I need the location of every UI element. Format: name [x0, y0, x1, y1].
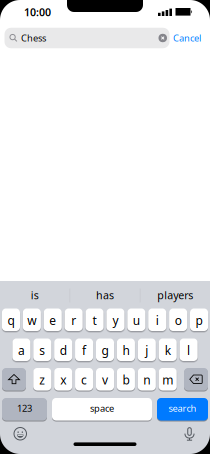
staticText: p: [196, 312, 203, 328]
staticText: space: [90, 402, 114, 414]
button[interactable]: t: [85, 308, 104, 331]
staticText: k: [165, 342, 171, 358]
button[interactable]: search: [157, 398, 208, 420]
button[interactable]: Dictation: [184, 425, 195, 439]
button[interactable]: players: [141, 281, 210, 304]
button[interactable]: n: [138, 368, 156, 390]
button[interactable]: space: [52, 398, 152, 420]
staticText: n: [143, 372, 150, 388]
button[interactable]: u: [127, 308, 145, 331]
staticText: i: [156, 312, 159, 328]
button[interactable]: z: [33, 368, 51, 390]
staticText: z: [39, 372, 45, 388]
staticText: c: [81, 372, 87, 388]
staticText: v: [102, 372, 108, 388]
button[interactable]: Emoji: [14, 426, 26, 438]
staticText: o: [175, 312, 182, 328]
staticText: 10:00: [24, 5, 51, 19]
staticText: is: [31, 288, 39, 302]
button[interactable]: q: [2, 308, 20, 331]
staticText: search: [168, 402, 196, 414]
button[interactable]: a: [12, 338, 30, 361]
button[interactable]: p: [190, 308, 208, 331]
staticText: e: [49, 312, 56, 328]
button[interactable]: i: [148, 308, 166, 331]
staticText: w: [27, 312, 36, 328]
staticText: h: [122, 342, 129, 358]
staticText: b: [122, 372, 129, 388]
button[interactable]: l: [180, 338, 198, 361]
button[interactable]: m: [159, 368, 177, 390]
staticText: j: [145, 342, 148, 358]
button[interactable]: b: [117, 368, 135, 390]
staticText: t: [93, 312, 97, 328]
button[interactable]: Shift: [2, 368, 26, 390]
staticText: y: [112, 312, 118, 328]
button[interactable]: Search field: [4, 28, 169, 48]
staticText: m: [162, 372, 173, 388]
staticText: Chess: [21, 32, 46, 44]
button[interactable]: Delete: [184, 368, 208, 390]
staticText: l: [187, 342, 190, 358]
staticText: r: [71, 312, 76, 328]
staticText: u: [133, 312, 140, 328]
staticText: d: [60, 342, 67, 358]
staticText: has: [96, 288, 114, 302]
button[interactable]: h: [117, 338, 135, 361]
button[interactable]: Clear text: [158, 34, 167, 42]
staticText: q: [7, 312, 14, 328]
button[interactable]: y: [106, 308, 124, 331]
staticText: Cancel: [173, 32, 201, 44]
button[interactable]: o: [169, 308, 187, 331]
button[interactable]: Cancel: [173, 32, 201, 44]
staticText: players: [157, 288, 193, 302]
button[interactable]: Numbers: [2, 398, 47, 420]
button[interactable]: k: [159, 338, 177, 361]
staticText: f: [82, 342, 86, 358]
staticText: s: [39, 342, 45, 358]
staticText: g: [101, 342, 108, 358]
button[interactable]: is: [0, 281, 69, 304]
button[interactable]: v: [96, 368, 114, 390]
button[interactable]: has: [70, 281, 140, 304]
button[interactable]: c: [75, 368, 93, 390]
staticText: x: [60, 372, 66, 388]
button[interactable]: d: [54, 338, 72, 361]
button[interactable]: w: [23, 308, 41, 331]
button[interactable]: s: [33, 338, 51, 361]
button[interactable]: g: [96, 338, 114, 361]
button[interactable]: f: [75, 338, 93, 361]
staticText: 123: [17, 402, 32, 414]
button[interactable]: e: [44, 308, 62, 331]
button[interactable]: r: [65, 308, 83, 331]
button[interactable]: x: [54, 368, 72, 390]
staticText: a: [18, 342, 25, 358]
button[interactable]: j: [138, 338, 156, 361]
